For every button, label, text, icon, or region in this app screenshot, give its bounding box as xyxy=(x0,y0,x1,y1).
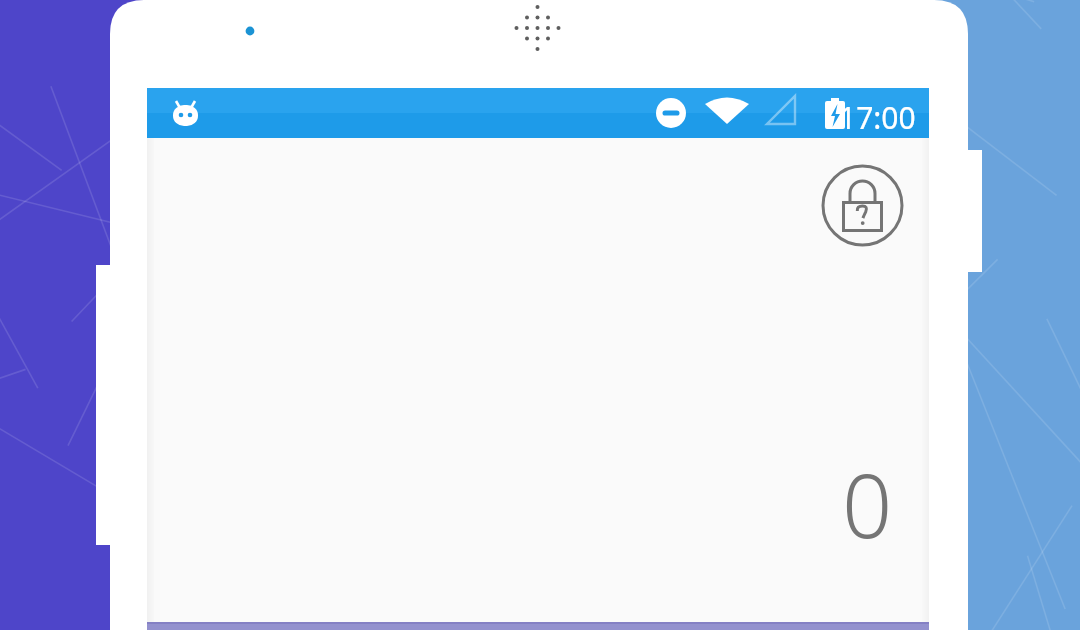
button[interactable]: Unlock help xyxy=(820,163,905,248)
staticText: 17:00 xyxy=(839,97,916,138)
button[interactable]: 17:00 xyxy=(147,88,929,138)
button[interactable]: 0 xyxy=(806,444,928,549)
staticText: 0 xyxy=(806,444,928,549)
